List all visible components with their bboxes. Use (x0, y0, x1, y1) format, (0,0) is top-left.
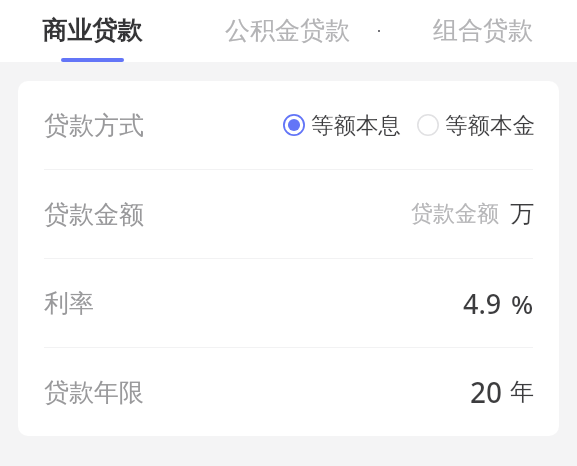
staticText: 贷款年限 (44, 377, 144, 408)
staticText: 贷款金额 (411, 200, 499, 228)
button[interactable]: 公积金贷款 (190, 0, 385, 62)
button[interactable]: 贷款方式 (18, 81, 559, 169)
staticText: % (511, 286, 534, 321)
staticText: 万 (510, 199, 534, 229)
staticText: 20 (470, 373, 503, 411)
staticText: 4.9 (463, 285, 502, 322)
staticText: 公积金贷款 (225, 15, 350, 46)
button[interactable]: 贷款年限 (18, 348, 559, 436)
staticText: 贷款金额 (44, 199, 144, 230)
staticText: 等额本金 (445, 111, 535, 139)
staticText: 等额本息 (311, 111, 401, 139)
staticText: 年 (510, 377, 534, 407)
button[interactable]: 利率 (18, 259, 559, 347)
staticText: 贷款方式 (44, 110, 144, 141)
button[interactable]: 组合贷款 (385, 0, 577, 62)
button[interactable]: 贷款金额 (18, 170, 559, 258)
staticText: 组合贷款 (433, 15, 533, 46)
staticText: 利率 (44, 288, 94, 319)
button[interactable]: 商业贷款 (0, 0, 190, 62)
button[interactable]: 等额本息 (283, 111, 401, 139)
button[interactable]: 等额本金 (417, 111, 535, 139)
staticText: 商业贷款 (42, 15, 142, 46)
